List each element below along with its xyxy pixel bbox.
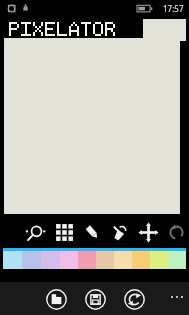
button[interactable]: Refresh [121,286,147,312]
button[interactable]: Fill [108,220,132,244]
button[interactable]: Zoom [24,220,48,244]
button[interactable]: Open [43,286,69,312]
button[interactable]: Undo [164,220,188,244]
button[interactable]: More options [165,282,189,315]
button[interactable]: Grid [52,220,76,244]
button[interactable]: Pencil [80,220,104,244]
button[interactable]: Move [136,220,160,244]
staticText: 17:57 [163,3,184,14]
button[interactable]: Save [82,286,108,312]
